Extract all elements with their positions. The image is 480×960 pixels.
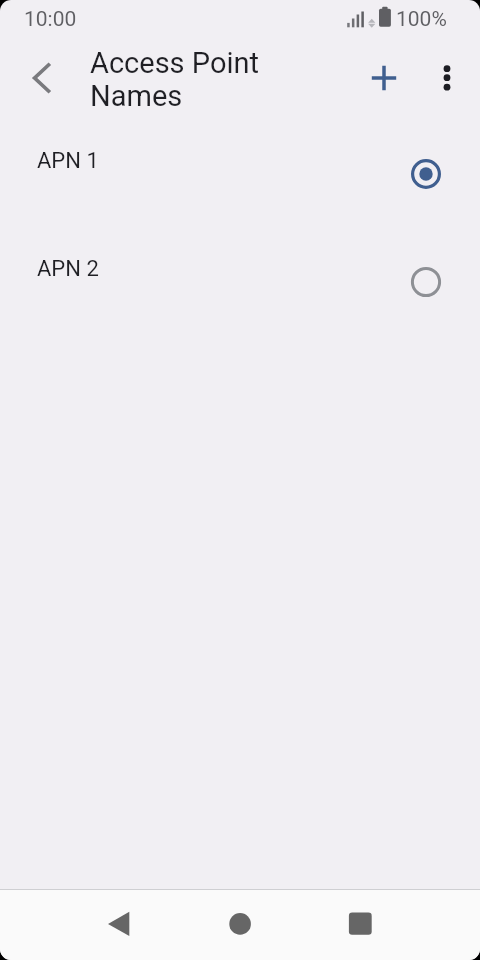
button[interactable]: APN 2 (0, 230, 480, 338)
button[interactable]: More options (423, 54, 471, 102)
staticText: Access Point Names (90, 46, 270, 113)
staticText: 100% (396, 7, 447, 32)
staticText: 10:00 (24, 7, 77, 32)
button[interactable]: Back (95, 900, 143, 948)
staticText: APN 1 (37, 148, 99, 174)
button[interactable]: Add APN (360, 54, 408, 102)
button[interactable]: APN 1 (0, 122, 480, 230)
button[interactable]: Recents (336, 900, 384, 948)
button[interactable]: Home (216, 900, 264, 948)
button[interactable]: Back (18, 56, 62, 100)
staticText: APN 2 (37, 256, 99, 282)
